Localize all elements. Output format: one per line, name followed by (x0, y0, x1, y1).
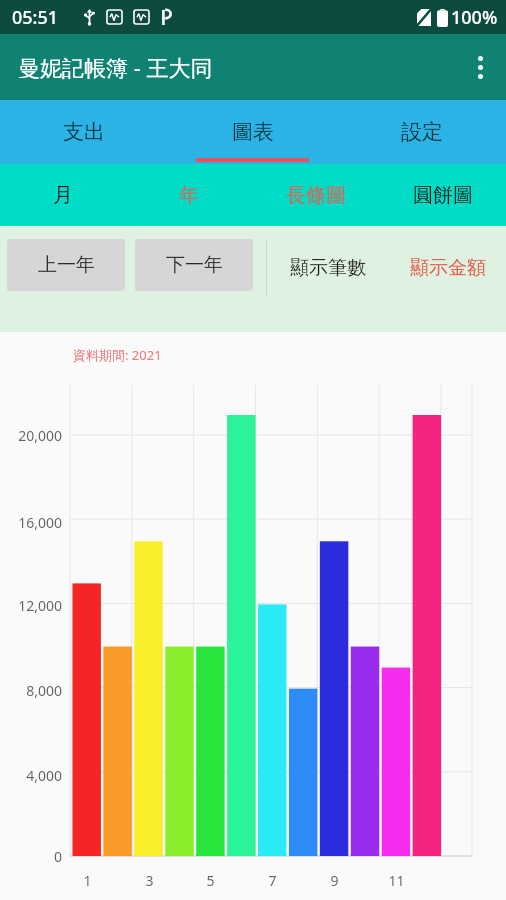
button[interactable]: 月 (0, 164, 126, 226)
staticText: 月 (53, 183, 73, 208)
staticText: 支出 (63, 119, 105, 145)
button[interactable]: 顯示金額 (389, 239, 506, 297)
staticText: 圖表 (232, 119, 274, 145)
button[interactable]: 下一年 (135, 239, 253, 291)
staticText: 9 (330, 871, 339, 890)
staticText: 8,000 (26, 681, 62, 700)
staticText: 顯示筆數 (290, 256, 366, 280)
staticText: 4,000 (26, 766, 62, 785)
staticText: 0 (53, 847, 62, 866)
staticText: 16,000 (18, 513, 62, 532)
button[interactable]: 長條圖 (252, 164, 379, 226)
staticText: 12,000 (18, 596, 62, 615)
button[interactable]: 設定 (337, 100, 506, 164)
button[interactable]: 支出 (0, 100, 168, 164)
staticText: 11 (388, 871, 405, 890)
staticText: 圓餅圖 (413, 183, 473, 208)
staticText: 05:51 (12, 5, 59, 30)
staticText: 長條圖 (286, 183, 346, 208)
staticText: 下一年 (166, 253, 223, 277)
staticText: 7 (268, 871, 277, 890)
staticText: 1 (83, 871, 92, 890)
button[interactable]: 年 (126, 164, 252, 226)
button[interactable]: 上一年 (7, 239, 125, 291)
staticText: 顯示金額 (410, 256, 486, 280)
button[interactable]: More options (454, 41, 506, 93)
button[interactable]: 圓餅圖 (379, 164, 506, 226)
staticText: 100% (451, 5, 498, 30)
button[interactable]: 顯示筆數 (267, 239, 389, 297)
button[interactable]: 圖表 (168, 100, 337, 164)
staticText: 上一年 (38, 253, 95, 277)
staticText: 5 (206, 871, 215, 890)
staticText: 3 (145, 871, 154, 890)
staticText: 設定 (401, 119, 443, 145)
staticText: 資料期間: 2021 (73, 346, 162, 364)
staticText: 20,000 (18, 426, 62, 445)
staticText: 曼妮記帳簿 - 王大同 (18, 52, 213, 82)
staticText: 年 (179, 183, 199, 208)
